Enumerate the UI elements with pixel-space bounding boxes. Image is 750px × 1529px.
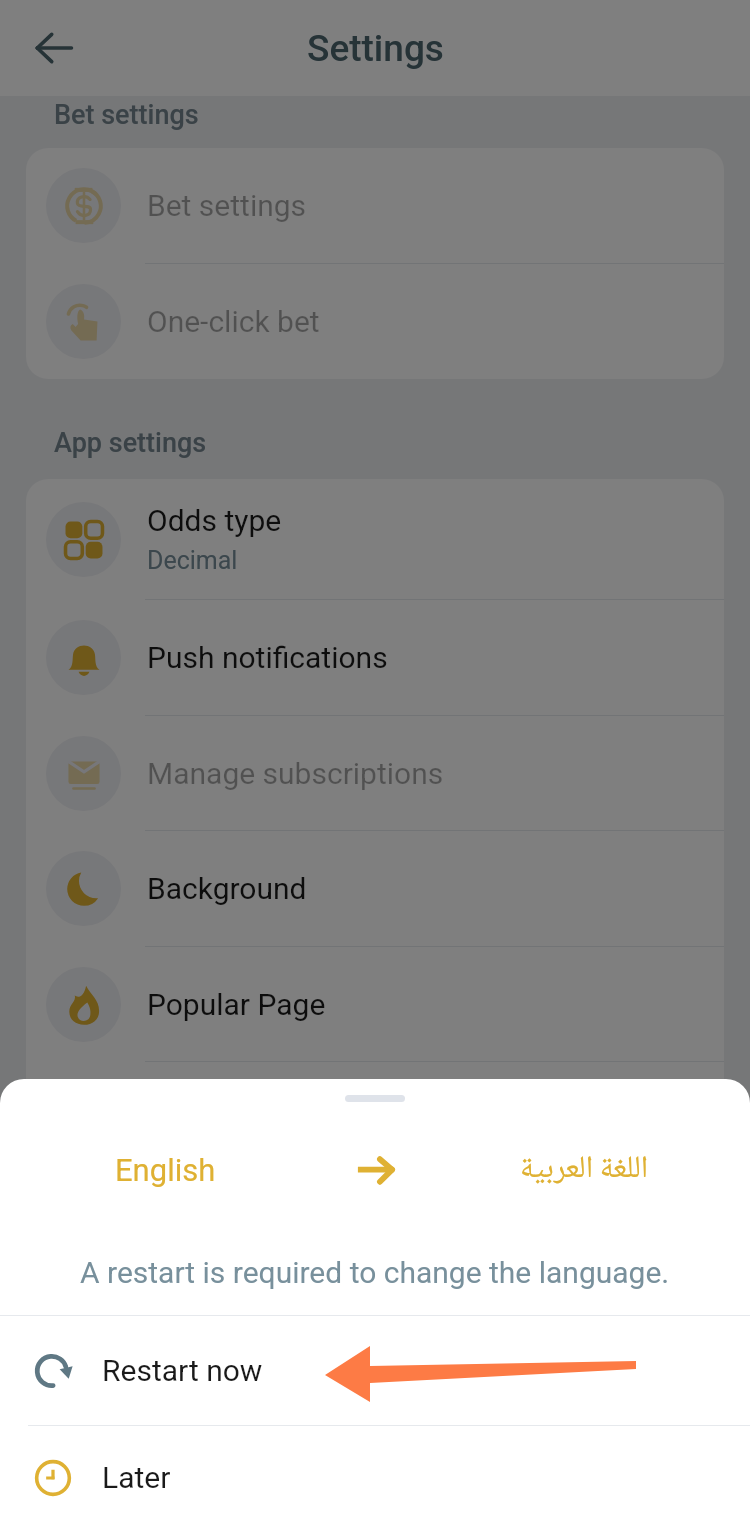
staticText: Push notifications — [147, 640, 388, 675]
staticText: Settings — [307, 27, 444, 70]
staticText: Decimal — [147, 546, 238, 575]
staticText: Bet settings — [54, 99, 199, 131]
staticText: Restart now — [102, 1353, 263, 1388]
staticText: English — [115, 1152, 216, 1188]
staticText: Popular Page — [147, 987, 326, 1022]
button[interactable]: Back — [21, 15, 87, 81]
button[interactable]: Live — [26, 1062, 724, 1177]
staticText: Background — [147, 871, 307, 906]
button[interactable]: English — [0, 1133, 331, 1207]
staticText: Bet settings — [147, 188, 307, 223]
button[interactable]: Push notifications — [26, 600, 724, 715]
button[interactable]: Restart now — [0, 1316, 750, 1425]
staticText: Later — [102, 1460, 171, 1495]
staticText: Manage subscriptions — [147, 756, 444, 791]
button[interactable]: Bet settings — [26, 148, 724, 263]
button[interactable]: Popular Page — [26, 947, 724, 1061]
staticText: Odds type — [147, 503, 282, 538]
staticText: اللغة العربية — [520, 1144, 649, 1197]
button[interactable]: Later — [0, 1426, 750, 1529]
button[interactable]: اللغة العربية — [419, 1133, 750, 1207]
button[interactable]: One-click bet — [26, 264, 724, 379]
button[interactable]: Odds type — [26, 479, 724, 599]
button[interactable]: Manage subscriptions — [26, 716, 724, 830]
staticText: App settings — [54, 427, 207, 459]
staticText: A restart is required to change the lang… — [80, 1255, 670, 1290]
staticText: One-click bet — [147, 304, 320, 339]
button[interactable]: Background — [26, 831, 724, 946]
